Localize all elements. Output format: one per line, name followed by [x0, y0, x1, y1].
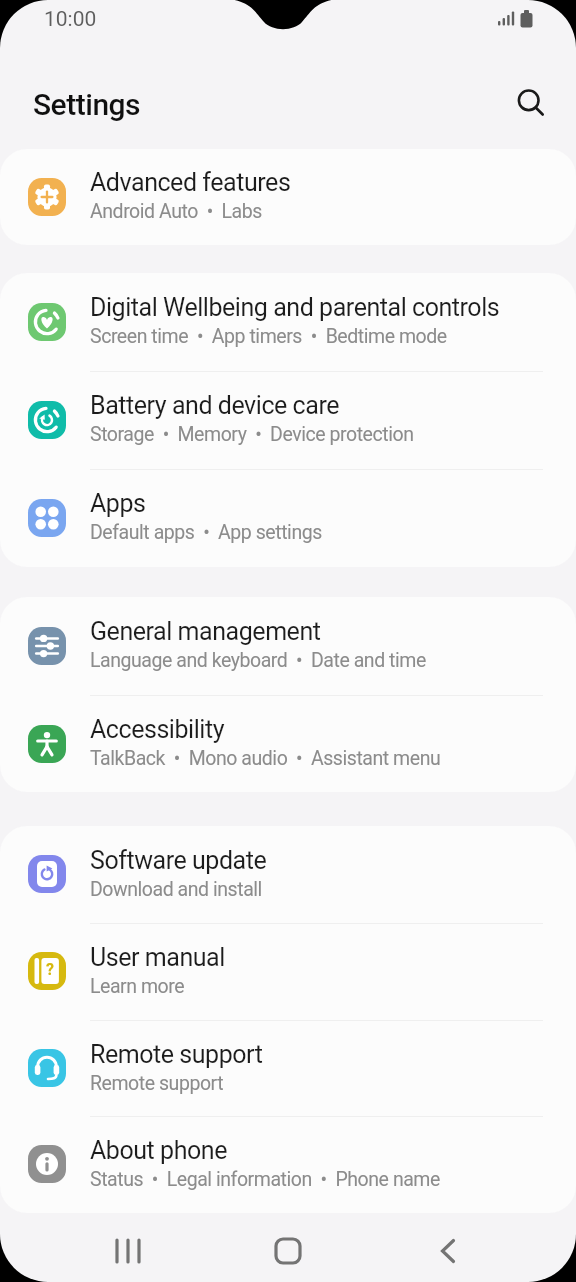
staticText: Status • Legal information • Phone name	[90, 1168, 440, 1191]
button[interactable]	[88, 1220, 168, 1282]
staticText: ?	[46, 960, 54, 979]
button[interactable]: ?	[0, 923, 576, 1020]
staticText: TalkBack • Mono audio • Assistant menu	[90, 747, 441, 770]
button[interactable]: Apps	[0, 469, 576, 567]
staticText: Language and keyboard • Date and time	[90, 649, 426, 672]
button[interactable]: Advanced features	[0, 149, 576, 245]
button[interactable]	[248, 1220, 328, 1282]
button[interactable]: General management	[0, 597, 576, 695]
button[interactable]: About phone	[0, 1116, 576, 1213]
staticText: User manual	[90, 943, 225, 972]
button[interactable]: Software update	[0, 826, 576, 923]
staticText: Settings	[33, 87, 141, 122]
staticText: Storage • Memory • Device protection	[90, 423, 414, 446]
staticText: Android Auto • Labs	[90, 200, 262, 223]
staticText: Default apps • App settings	[90, 521, 322, 544]
staticText: About phone	[90, 1136, 227, 1165]
button[interactable]	[505, 77, 553, 125]
staticText: General management	[90, 617, 321, 646]
staticText: Software update	[90, 846, 267, 875]
staticText: Remote support	[90, 1040, 263, 1069]
staticText: Remote support	[90, 1072, 224, 1095]
staticText: Digital Wellbeing and parental controls	[90, 293, 500, 322]
staticText: 10:00	[44, 7, 97, 32]
staticText: Screen time • App timers • Bedtime mode	[90, 325, 447, 348]
staticText: Download and install	[90, 878, 262, 901]
staticText: Battery and device care	[90, 391, 339, 420]
button[interactable]: Battery and device care	[0, 371, 576, 469]
staticText: Apps	[90, 489, 146, 518]
staticText: Accessibility	[90, 715, 225, 744]
staticText: Advanced features	[90, 168, 291, 197]
button[interactable]: Digital Wellbeing and parental controls	[0, 273, 576, 371]
button[interactable]: Accessibility	[0, 695, 576, 792]
button[interactable]: Remote support	[0, 1020, 576, 1117]
button[interactable]	[408, 1220, 488, 1282]
staticText: Learn more	[90, 975, 185, 998]
